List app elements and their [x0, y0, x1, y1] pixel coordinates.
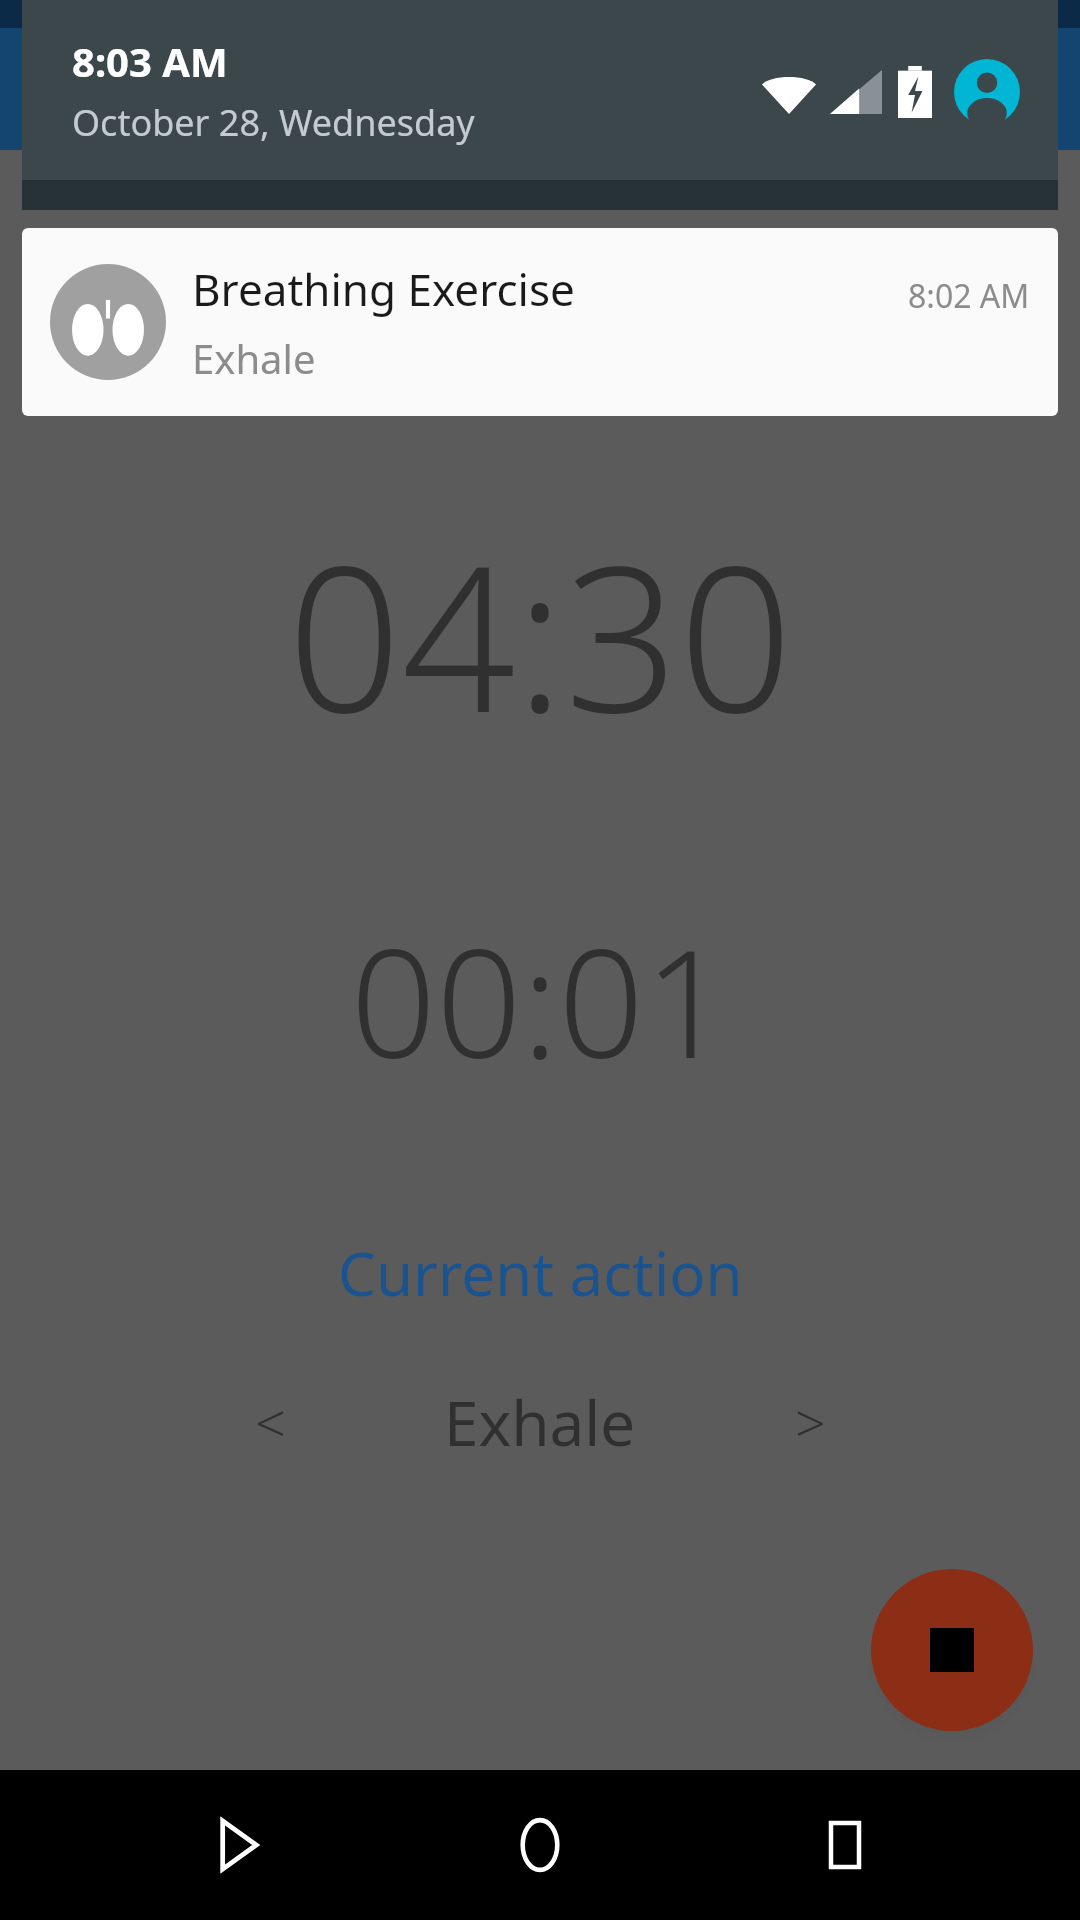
staticText: 04:30 — [287, 498, 793, 770]
button[interactable]: Stop — [871, 1569, 1033, 1731]
button[interactable]: Breathing Exercise — [22, 228, 1058, 416]
button[interactable]: Previous action — [230, 1382, 310, 1462]
staticText: 00:01 — [350, 898, 730, 1102]
staticText: Exhale — [192, 331, 316, 385]
staticText: Breathing Exercise — [192, 259, 575, 319]
staticText: 8:02 AM — [908, 274, 1030, 318]
staticText: < — [255, 1385, 286, 1459]
button[interactable]: Next action — [770, 1382, 850, 1462]
staticText: 8:03 AM — [72, 34, 228, 88]
button[interactable]: Back — [165, 1775, 305, 1915]
staticText: > — [795, 1385, 826, 1459]
other: User account — [954, 59, 1020, 125]
staticText: October 28, Wednesday — [72, 98, 475, 147]
button[interactable]: Home — [470, 1775, 610, 1915]
button[interactable]: Recent apps — [775, 1775, 915, 1915]
staticText: Exhale — [444, 1380, 636, 1464]
staticText: Current action — [338, 1232, 743, 1314]
